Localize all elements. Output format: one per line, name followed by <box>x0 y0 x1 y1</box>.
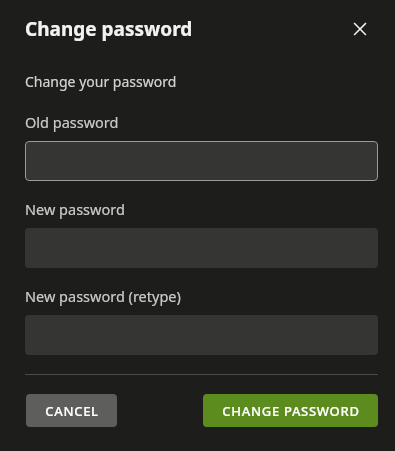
staticText: CHANGE PASSWORD <box>222 402 360 420</box>
staticText: New password (retype) <box>25 286 181 306</box>
button[interactable]: CHANGE PASSWORD <box>203 394 378 427</box>
button[interactable]: Close <box>342 11 378 47</box>
button[interactable] <box>25 141 378 181</box>
staticText: Change password <box>25 16 193 42</box>
staticText: New password <box>25 199 125 219</box>
staticText: Change your password <box>25 72 177 91</box>
button[interactable]: CANCEL <box>26 394 117 427</box>
staticText: CANCEL <box>45 402 99 420</box>
staticText: Old password <box>25 112 119 132</box>
